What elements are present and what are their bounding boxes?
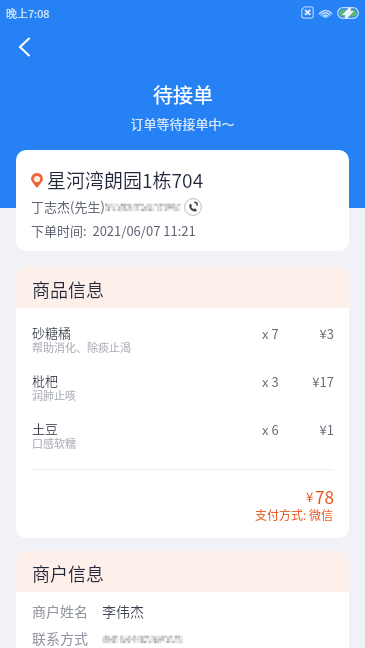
staticText: x 7 [262,324,279,343]
staticText: 晚上7:08 [6,5,50,21]
staticText: 商户信息 [32,560,104,586]
staticText: 78 [315,484,334,509]
staticText: ¥ [306,487,314,506]
staticText: 下单时间: 2021/06/07 11:21 [31,221,196,240]
button[interactable]: Call customer [184,198,202,216]
staticText: 订单等待接单中～ [130,114,235,133]
staticText: 商户姓名 [32,601,88,621]
staticText: x 3 [262,372,279,391]
staticText: 口感软糯 [32,435,76,451]
staticText: 砂糖橘 [32,323,72,342]
staticText: 帮助消化、除痰止渴 [32,339,131,355]
staticText: ¥3 [16,324,334,343]
staticText: 待接单 [153,80,213,109]
staticText: 联系方式 [32,628,88,648]
button[interactable]: Back [6,28,44,66]
staticText: 土豆 [32,419,59,438]
staticText: 商品信息 [32,276,104,302]
staticText: 星河湾朗园1栋704 [47,166,204,194]
button[interactable]: 星河湾朗园1栋704 [16,150,349,251]
staticText: ¥17 [16,372,334,391]
staticText: 丁志杰(先生) [31,197,105,216]
staticText: 李伟杰 [102,601,144,621]
staticText: x 6 [262,420,279,439]
staticText: 润肺止咳 [32,387,76,403]
staticText: 枇杷 [32,371,59,390]
staticText: ¥1 [16,420,334,439]
staticText: 支付方式: 微信 [255,506,334,523]
